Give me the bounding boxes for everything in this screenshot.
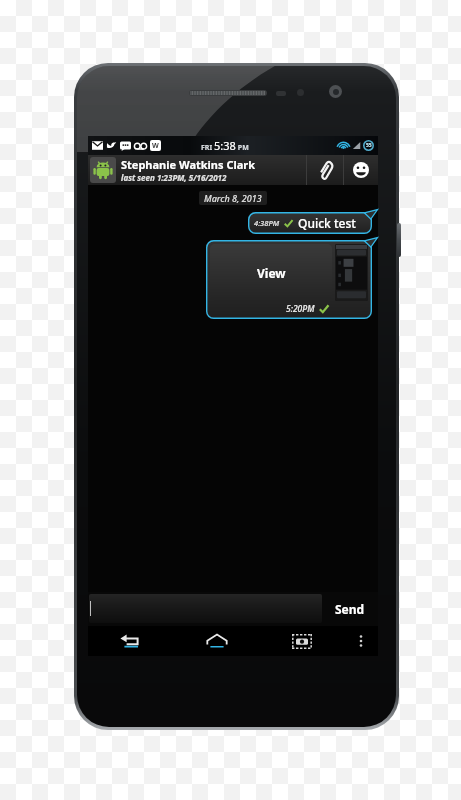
staticText: 4:38PM bbox=[254, 218, 280, 228]
button[interactable]: Emoji bbox=[344, 155, 378, 185]
button[interactable]: Back bbox=[88, 626, 174, 656]
button[interactable]: View bbox=[206, 240, 372, 319]
button[interactable]: More options bbox=[344, 626, 378, 656]
staticText: 5:38 bbox=[214, 138, 236, 153]
button[interactable]: 4:38PM bbox=[248, 212, 372, 234]
staticText: March 8, 2013 bbox=[204, 192, 262, 204]
staticText: last seen 1:23PM, 5/16/2012 bbox=[121, 172, 227, 183]
staticText: W bbox=[152, 141, 159, 151]
staticText: Quick test bbox=[298, 215, 356, 231]
button[interactable]: Recent apps bbox=[259, 626, 344, 656]
staticText: 55 bbox=[366, 142, 372, 149]
button[interactable]: Attach bbox=[307, 155, 343, 185]
staticText: View bbox=[257, 265, 286, 281]
staticText: Send bbox=[335, 601, 365, 617]
other: Power button bbox=[397, 223, 401, 257]
button[interactable]: Home bbox=[174, 626, 259, 656]
staticText: 5:20PM bbox=[286, 303, 315, 315]
staticText: PM bbox=[236, 143, 249, 153]
staticText: Stephanie Watkins Clark bbox=[121, 157, 256, 172]
button[interactable]: Send bbox=[322, 592, 378, 626]
staticText: FRI bbox=[201, 143, 214, 153]
button[interactable]: Stephanie Watkins Clark bbox=[88, 155, 378, 185]
button[interactable]: Message input bbox=[89, 594, 322, 623]
button[interactable]: View bbox=[210, 244, 332, 301]
